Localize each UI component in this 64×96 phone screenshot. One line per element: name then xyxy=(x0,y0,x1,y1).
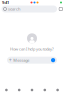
button[interactable]: Tabs xyxy=(51,84,64,96)
button[interactable]: search xyxy=(1,5,57,12)
button[interactable]: Share xyxy=(26,84,38,96)
button[interactable]: Bookmarks xyxy=(38,84,51,96)
button[interactable]: Forward xyxy=(13,84,26,96)
button[interactable]: Back xyxy=(0,84,13,96)
staticText: + xyxy=(9,57,12,64)
staticText: 9:41 xyxy=(2,0,9,5)
button[interactable]: + xyxy=(7,57,57,64)
staticText: search xyxy=(8,6,20,12)
button[interactable]: Tabs xyxy=(59,7,62,11)
staticText: How can I help you today? xyxy=(10,46,54,52)
staticText: Message xyxy=(13,57,29,63)
